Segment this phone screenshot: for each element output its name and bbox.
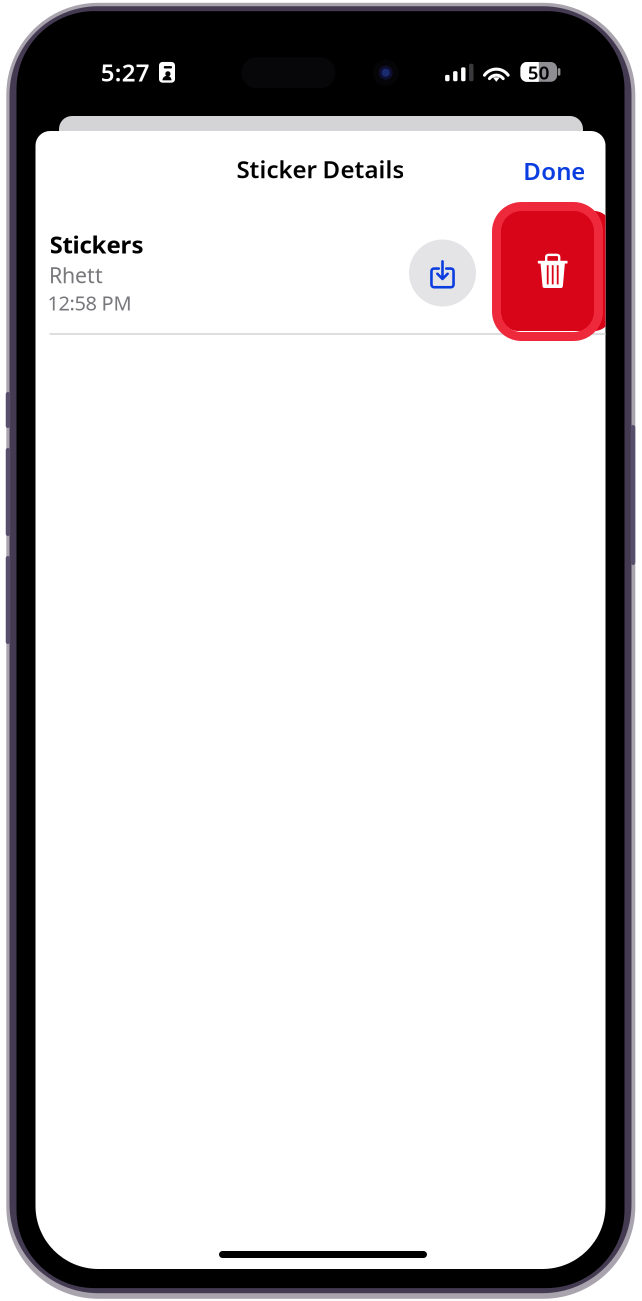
staticText: 12:58 PM <box>47 289 131 316</box>
button[interactable]: Save <box>409 239 476 306</box>
button[interactable]: Done <box>513 147 595 195</box>
staticText: 50 <box>528 60 550 85</box>
button[interactable]: Delete <box>501 211 611 331</box>
staticText: Stickers <box>49 228 143 260</box>
staticText: 5:27 <box>101 56 150 88</box>
staticText: Rhett <box>49 261 103 289</box>
button[interactable]: Stickers <box>50 204 500 333</box>
staticText: Done <box>523 155 585 187</box>
staticText: Sticker Details <box>236 153 404 185</box>
